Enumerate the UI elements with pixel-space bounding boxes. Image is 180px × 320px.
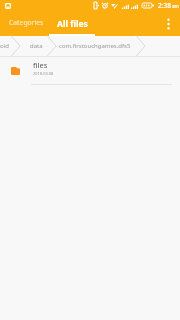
staticText: oid xyxy=(0,42,9,50)
button[interactable]: data xyxy=(30,36,43,56)
staticText: 2018-03-08 xyxy=(33,71,54,76)
button[interactable]: oid xyxy=(0,36,9,56)
other: Screenshot captured xyxy=(5,3,11,9)
staticText: com.firstouchgames.dfs5 xyxy=(59,42,131,50)
button[interactable]: More options xyxy=(156,11,180,36)
button[interactable]: All files xyxy=(49,11,95,36)
staticText: am xyxy=(172,3,179,9)
button[interactable]: files xyxy=(0,57,180,85)
staticText: data xyxy=(30,42,43,50)
button[interactable]: Categories xyxy=(4,11,49,36)
staticText: Categories xyxy=(9,18,44,27)
staticText: All files xyxy=(57,18,88,30)
button[interactable]: com.firstouchgames.dfs5 xyxy=(59,36,131,56)
staticText: files xyxy=(33,60,48,70)
staticText: 2:38 xyxy=(158,1,171,10)
